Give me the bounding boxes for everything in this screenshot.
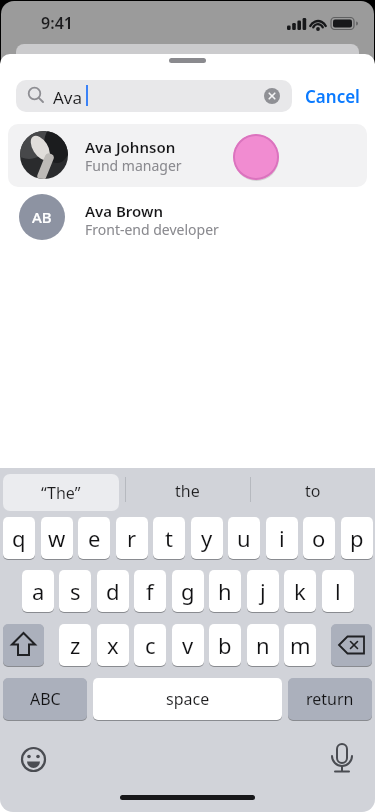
button[interactable] (331, 624, 372, 666)
staticText: f (146, 576, 154, 606)
staticText: Ava Johnson (85, 137, 176, 157)
button[interactable]: u (228, 517, 260, 559)
button[interactable]: j (247, 570, 279, 612)
button[interactable] (8, 124, 367, 187)
staticText: 9:41 (30, 12, 84, 34)
button[interactable]: the (125, 468, 250, 513)
staticText: space (166, 688, 210, 710)
staticText: p (350, 523, 364, 553)
button[interactable]: a (22, 570, 54, 612)
staticText: u (237, 523, 251, 553)
staticText: the (175, 480, 200, 502)
button[interactable]: “The” (3, 474, 119, 511)
button[interactable] (329, 742, 355, 778)
staticText: k (294, 576, 306, 606)
staticText: AB (32, 207, 52, 227)
button[interactable]: s (59, 570, 91, 612)
button[interactable]: k (284, 570, 316, 612)
button[interactable] (16, 80, 292, 112)
button[interactable]: q (3, 517, 35, 559)
button[interactable]: h (209, 570, 241, 612)
button[interactable]: ABC (3, 678, 87, 720)
staticText: Cancel (305, 85, 360, 108)
staticText: Fund manager (85, 156, 182, 175)
button[interactable]: g (172, 570, 204, 612)
button[interactable]: w (41, 517, 73, 559)
staticText: Ava Brown (85, 201, 164, 221)
staticText: Front-end developer (85, 220, 219, 239)
button[interactable]: return (288, 678, 372, 720)
button[interactable]: m (284, 624, 316, 666)
staticText: l (335, 576, 341, 606)
staticText: n (256, 630, 270, 660)
button[interactable]: p (341, 517, 373, 559)
staticText: Ava (53, 86, 83, 109)
staticText: y (201, 523, 213, 553)
button[interactable]: r (116, 517, 148, 559)
button[interactable]: x (97, 624, 129, 666)
button[interactable]: f (134, 570, 166, 612)
staticText: m (290, 630, 311, 660)
staticText: d (106, 576, 120, 606)
staticText: s (70, 576, 81, 606)
button[interactable] (8, 190, 367, 246)
button[interactable]: i (266, 517, 298, 559)
button[interactable]: c (134, 624, 166, 666)
button[interactable]: d (97, 570, 129, 612)
staticText: e (88, 523, 101, 553)
button[interactable]: e (78, 517, 110, 559)
staticText: h (218, 576, 232, 606)
button[interactable]: space (93, 678, 282, 720)
staticText: b (218, 630, 232, 660)
button[interactable]: t (153, 517, 185, 559)
staticText: c (145, 630, 156, 660)
button[interactable]: Cancel (300, 82, 364, 110)
button[interactable]: y (191, 517, 223, 559)
staticText: w (48, 523, 66, 553)
staticText: ABC (30, 688, 61, 710)
button[interactable] (3, 624, 44, 666)
staticText: o (312, 523, 326, 553)
button[interactable]: l (322, 570, 354, 612)
staticText: r (127, 523, 137, 553)
staticText: g (181, 576, 195, 606)
staticText: i (279, 523, 285, 553)
staticText: return (306, 688, 354, 710)
staticText: q (12, 523, 26, 553)
staticText: v (182, 630, 194, 660)
staticText: t (165, 523, 173, 553)
button[interactable] (18, 744, 49, 775)
staticText: “The” (41, 482, 81, 504)
staticText: to (305, 480, 321, 502)
button[interactable]: to (250, 468, 375, 513)
staticText: a (32, 576, 45, 606)
button[interactable]: b (209, 624, 241, 666)
staticText: x (107, 630, 119, 660)
button[interactable]: o (303, 517, 335, 559)
staticText: z (70, 630, 81, 660)
button[interactable] (264, 88, 280, 104)
button[interactable]: v (172, 624, 204, 666)
button[interactable]: n (247, 624, 279, 666)
button[interactable]: z (59, 624, 91, 666)
staticText: j (260, 576, 266, 606)
